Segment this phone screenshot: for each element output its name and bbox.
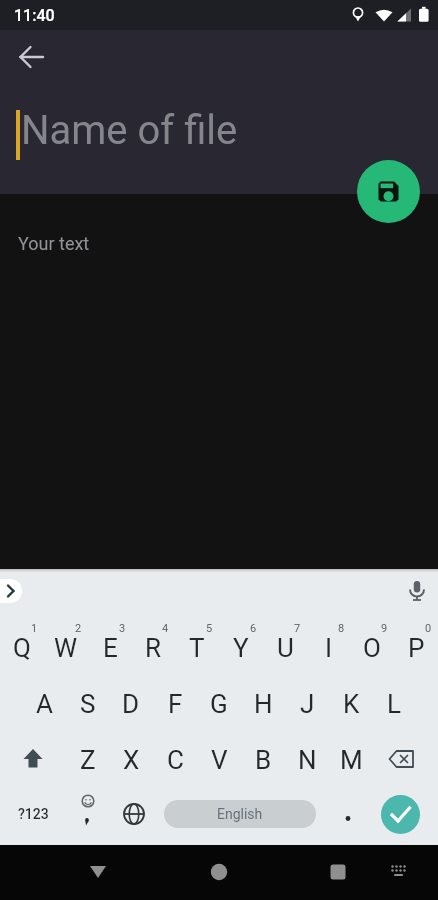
button[interactable]: U bbox=[263, 622, 307, 674]
button[interactable]: E bbox=[88, 622, 132, 674]
button[interactable] bbox=[66, 794, 110, 834]
staticText: R bbox=[145, 633, 162, 663]
button[interactable]: Name of file bbox=[0, 98, 438, 174]
button[interactable] bbox=[383, 854, 417, 888]
button[interactable]: D bbox=[109, 678, 153, 730]
button[interactable]: N bbox=[285, 734, 329, 786]
button[interactable]: ?123 bbox=[11, 794, 55, 834]
staticText: C bbox=[167, 745, 184, 775]
staticText: Y bbox=[233, 633, 249, 663]
staticText: P bbox=[408, 633, 425, 663]
staticText: K bbox=[343, 689, 360, 719]
staticText: O bbox=[363, 633, 381, 663]
button[interactable]: T bbox=[175, 622, 219, 674]
staticText: Your text bbox=[18, 233, 90, 254]
staticText: S bbox=[80, 689, 96, 719]
button[interactable] bbox=[403, 578, 431, 606]
staticText: E bbox=[103, 633, 118, 663]
button[interactable] bbox=[0, 579, 22, 603]
staticText: U bbox=[277, 633, 294, 663]
button[interactable]: Y bbox=[219, 622, 263, 674]
staticText: 11:40 bbox=[14, 6, 55, 25]
staticText: 5 bbox=[206, 622, 213, 635]
button[interactable]: C bbox=[153, 734, 197, 786]
staticText: G bbox=[210, 689, 228, 719]
staticText: 6 bbox=[250, 622, 257, 635]
staticText: N bbox=[298, 745, 317, 775]
button[interactable]: W bbox=[44, 622, 88, 674]
staticText: J bbox=[300, 689, 315, 719]
button[interactable]: Your text bbox=[0, 194, 438, 569]
button[interactable]: Z bbox=[66, 734, 110, 786]
staticText: 0 bbox=[425, 622, 432, 635]
staticText: 2 bbox=[75, 622, 82, 635]
button[interactable] bbox=[381, 795, 420, 834]
button[interactable]: I bbox=[307, 622, 351, 674]
staticText: T bbox=[189, 633, 205, 663]
button[interactable]: J bbox=[285, 678, 329, 730]
button[interactable] bbox=[314, 848, 362, 896]
button[interactable] bbox=[8, 34, 54, 80]
staticText: 9 bbox=[381, 622, 388, 635]
staticText: H bbox=[254, 689, 273, 719]
button[interactable]: A bbox=[22, 678, 66, 730]
button[interactable] bbox=[11, 739, 55, 781]
staticText: A bbox=[36, 689, 53, 719]
button[interactable] bbox=[195, 848, 243, 896]
button[interactable]: M bbox=[329, 734, 373, 786]
staticText: 3 bbox=[119, 622, 126, 635]
button[interactable] bbox=[330, 794, 366, 834]
button[interactable]: K bbox=[329, 678, 373, 730]
button[interactable] bbox=[357, 160, 420, 223]
button[interactable]: P bbox=[394, 622, 438, 674]
staticText: Q bbox=[13, 633, 31, 663]
button[interactable]: F bbox=[153, 678, 197, 730]
button[interactable]: Q bbox=[0, 622, 44, 674]
staticText: Z bbox=[80, 745, 96, 775]
button[interactable]: V bbox=[197, 734, 241, 786]
button[interactable] bbox=[112, 794, 156, 834]
staticText: B bbox=[255, 745, 272, 775]
staticText: I bbox=[325, 633, 333, 663]
staticText: M bbox=[340, 745, 363, 775]
staticText: Name of file bbox=[21, 107, 238, 154]
button[interactable]: X bbox=[109, 734, 153, 786]
button[interactable]: B bbox=[241, 734, 285, 786]
staticText: X bbox=[123, 745, 140, 775]
button[interactable]: L bbox=[372, 678, 416, 730]
staticText: W bbox=[54, 633, 78, 663]
staticText: 1 bbox=[31, 622, 38, 635]
button[interactable]: H bbox=[241, 678, 285, 730]
button[interactable]: S bbox=[66, 678, 110, 730]
staticText: D bbox=[122, 689, 140, 719]
button[interactable]: O bbox=[350, 622, 394, 674]
staticText: 8 bbox=[338, 622, 345, 635]
button[interactable] bbox=[74, 848, 122, 896]
staticText: 7 bbox=[294, 622, 301, 635]
button[interactable] bbox=[380, 739, 424, 781]
staticText: L bbox=[387, 689, 402, 719]
staticText: V bbox=[211, 745, 228, 775]
button[interactable]: R bbox=[131, 622, 175, 674]
button[interactable]: G bbox=[197, 678, 241, 730]
staticText: 4 bbox=[162, 622, 169, 635]
staticText: F bbox=[168, 689, 183, 719]
button[interactable]: English bbox=[164, 800, 316, 828]
staticText: ?123 bbox=[18, 806, 49, 822]
staticText: English bbox=[217, 806, 263, 822]
